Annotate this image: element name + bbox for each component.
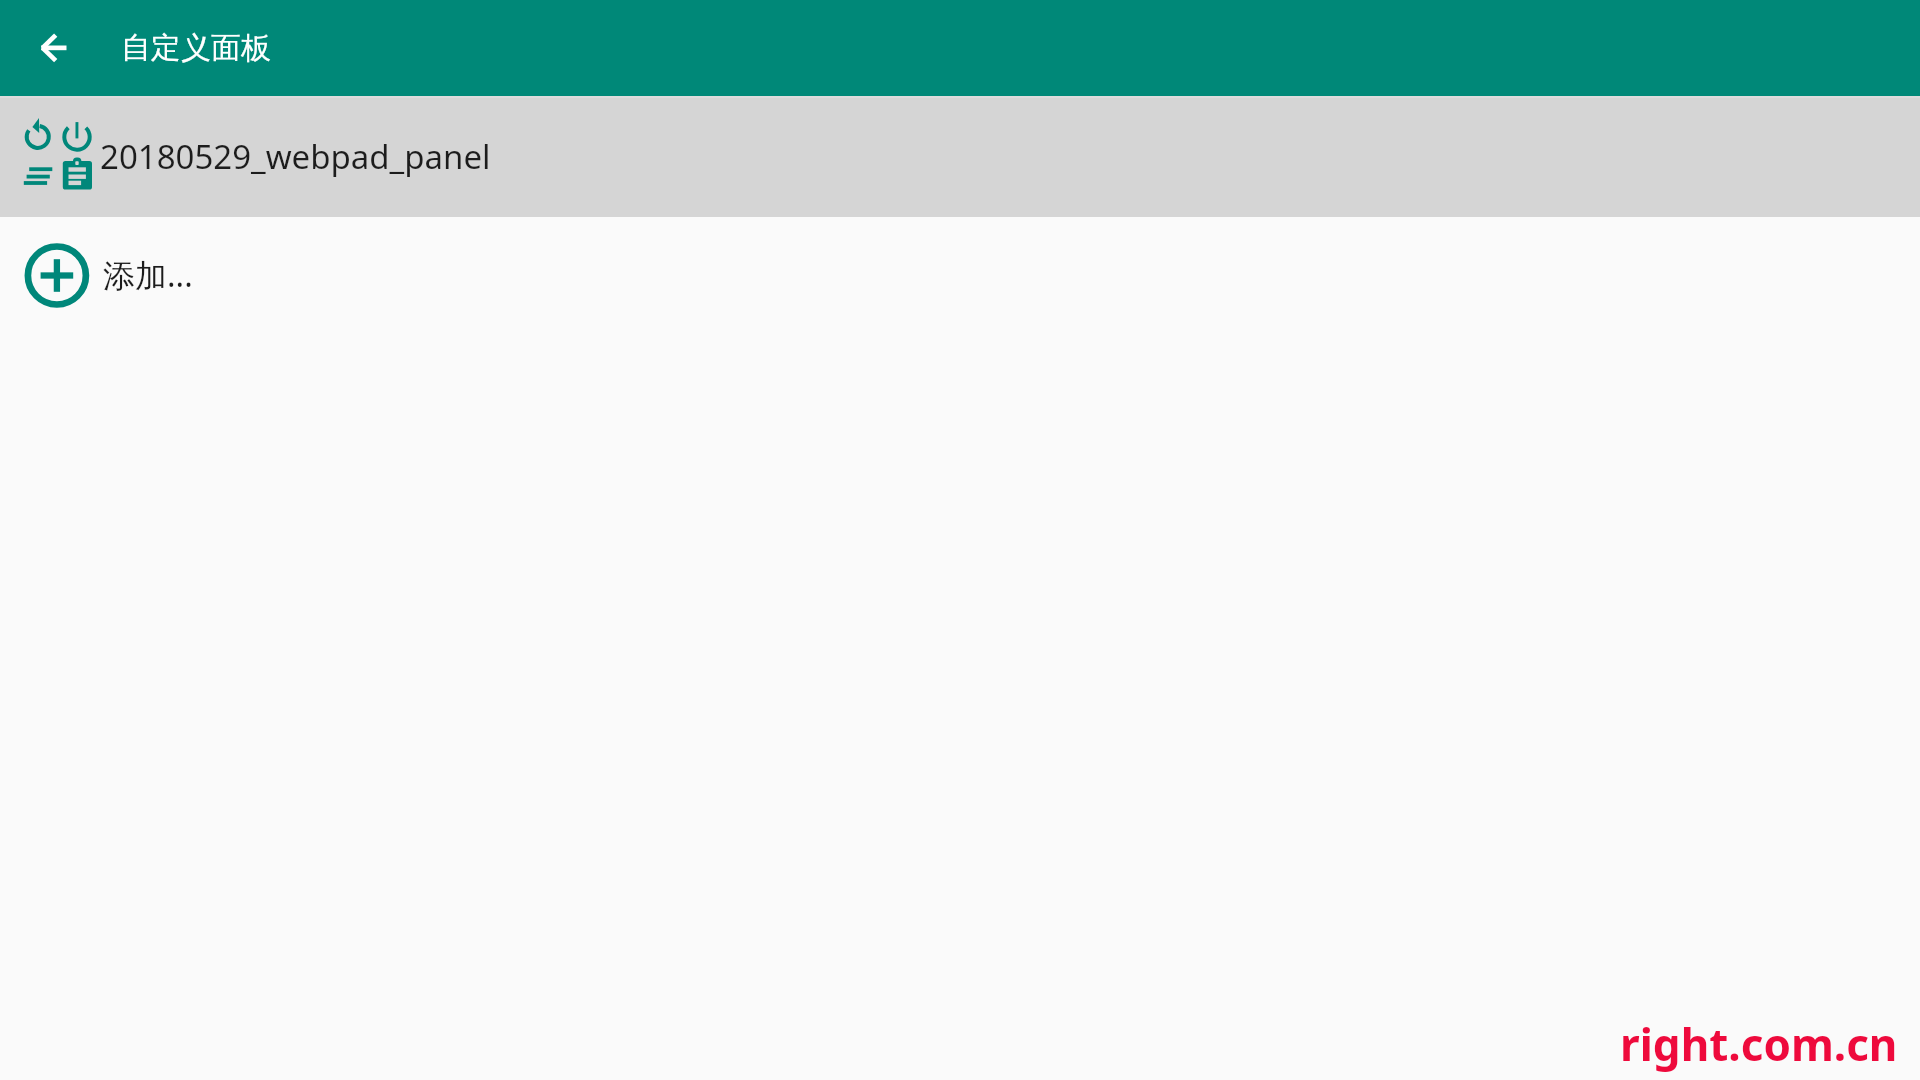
staticText: 添加... <box>103 253 193 297</box>
staticText: right.com.cn <box>1620 1014 1898 1074</box>
button[interactable]: 20180529_webpad_panel <box>0 98 1920 217</box>
button[interactable]: Back <box>0 0 96 96</box>
staticText: 20180529_webpad_panel <box>100 134 491 179</box>
button[interactable]: 添加... <box>0 217 1920 343</box>
staticText: 自定义面板 <box>121 29 271 67</box>
